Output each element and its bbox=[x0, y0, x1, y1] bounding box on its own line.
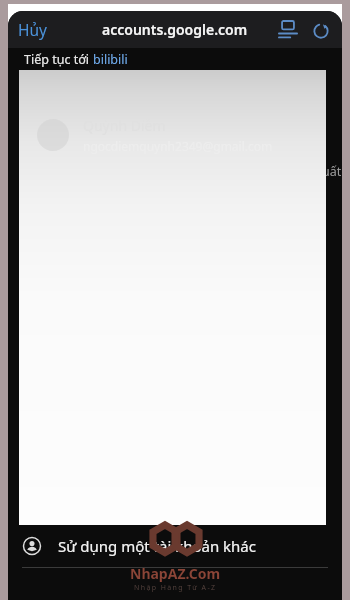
staticText: Nhập Hàng Từ A-Z bbox=[134, 583, 217, 593]
button[interactable]: Sử dụng một tài khoản khác bbox=[8, 525, 342, 567]
button[interactable]: Page settings bbox=[274, 16, 302, 44]
staticText: Sử dụng một tài khoản khác bbox=[58, 536, 256, 556]
button[interactable]: Reload bbox=[307, 16, 335, 44]
staticText: NhapAZ.Com bbox=[130, 564, 221, 583]
staticText: accounts.google.com bbox=[102, 20, 248, 39]
button[interactable]: Hủy bbox=[12, 15, 53, 44]
staticText: bilibili bbox=[93, 51, 128, 68]
staticText: uất bbox=[322, 163, 342, 180]
staticText: Hủy bbox=[18, 19, 47, 40]
staticText: Tiếp tục tới bbox=[24, 51, 93, 68]
